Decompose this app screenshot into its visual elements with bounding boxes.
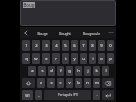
staticText: Bought bbox=[59, 31, 71, 35]
button[interactable]: l bbox=[102, 66, 109, 76]
staticText: 5 bbox=[64, 43, 67, 49]
button[interactable]: n bbox=[84, 78, 91, 88]
button[interactable]: z bbox=[37, 78, 45, 88]
button[interactable]: Bouge bbox=[31, 27, 53, 38]
staticText: Português (PT) bbox=[58, 93, 78, 97]
button[interactable]: a bbox=[28, 66, 36, 76]
staticText: . bbox=[96, 92, 98, 98]
button[interactable]: o bbox=[98, 53, 105, 64]
staticText: 9 bbox=[100, 43, 103, 49]
staticText: x bbox=[50, 80, 53, 86]
staticText: 0 bbox=[109, 43, 112, 49]
staticText: h bbox=[77, 68, 80, 74]
button[interactable]: 2 bbox=[32, 40, 40, 51]
button[interactable]: d bbox=[48, 66, 55, 76]
button[interactable]: s bbox=[38, 66, 46, 76]
staticText: n bbox=[86, 80, 89, 86]
staticText: !#1 bbox=[25, 93, 30, 97]
staticText: o bbox=[100, 56, 103, 62]
staticText: i bbox=[92, 56, 94, 62]
staticText: g bbox=[68, 68, 71, 74]
button[interactable]: 4 bbox=[52, 40, 60, 51]
button[interactable]: y bbox=[71, 53, 78, 64]
button[interactable]: . bbox=[93, 90, 100, 100]
button[interactable]: Backspace bbox=[102, 78, 114, 88]
button[interactable]: Português (PT) bbox=[44, 90, 91, 100]
staticText: a bbox=[31, 68, 34, 74]
button[interactable]: e bbox=[42, 53, 50, 64]
staticText: u bbox=[82, 56, 85, 62]
button[interactable]: r bbox=[52, 53, 60, 64]
staticText: b bbox=[77, 80, 80, 86]
button[interactable]: j bbox=[84, 66, 91, 76]
button[interactable]: c bbox=[57, 78, 64, 88]
button[interactable]: i bbox=[89, 53, 96, 64]
staticText: y bbox=[73, 56, 76, 62]
button[interactable]: , bbox=[35, 90, 42, 100]
button[interactable]: Bought bbox=[53, 27, 76, 38]
button[interactable]: 1 bbox=[22, 40, 30, 51]
staticText: 1 bbox=[25, 43, 28, 49]
button[interactable]: m bbox=[93, 78, 100, 88]
staticText: q bbox=[25, 56, 28, 62]
staticText: f bbox=[60, 68, 62, 74]
staticText: 8 bbox=[91, 43, 94, 49]
button[interactable]: 6 bbox=[71, 40, 78, 51]
staticText: e bbox=[45, 56, 48, 62]
staticText: t bbox=[65, 56, 67, 62]
button[interactable]: 0 bbox=[107, 40, 114, 51]
staticText: v bbox=[68, 80, 71, 86]
button[interactable]: p bbox=[107, 53, 114, 64]
staticText: 6 bbox=[73, 43, 76, 49]
staticText: j bbox=[87, 68, 89, 74]
staticText: m bbox=[95, 80, 99, 86]
button[interactable]: Previous suggestions bbox=[20, 27, 31, 38]
button[interactable]: u bbox=[80, 53, 87, 64]
button[interactable]: 3 bbox=[42, 40, 50, 51]
staticText: 3 bbox=[45, 43, 48, 49]
button[interactable]: 8 bbox=[89, 40, 96, 51]
button[interactable]: Bougnoule bbox=[76, 27, 106, 38]
staticText: w bbox=[34, 56, 38, 62]
button[interactable]: h bbox=[75, 66, 82, 76]
staticText: p bbox=[109, 56, 112, 62]
staticText: k bbox=[95, 68, 98, 74]
button[interactable]: Boug bbox=[20, 0, 116, 26]
staticText: 4 bbox=[55, 43, 58, 49]
button[interactable]: !#1 bbox=[22, 90, 33, 100]
button[interactable]: b bbox=[75, 78, 82, 88]
button[interactable]: v bbox=[66, 78, 73, 88]
button[interactable]: q bbox=[22, 53, 30, 64]
staticText: l bbox=[105, 68, 107, 74]
staticText: z bbox=[40, 80, 42, 86]
staticText: s bbox=[41, 68, 44, 74]
staticText: c bbox=[59, 80, 62, 86]
staticText: d bbox=[50, 68, 53, 74]
button[interactable]: More options bbox=[106, 27, 116, 38]
button[interactable]: Enter bbox=[102, 90, 114, 100]
button[interactable]: Shift bbox=[22, 78, 35, 88]
button[interactable]: f bbox=[57, 66, 64, 76]
staticText: , bbox=[38, 92, 40, 98]
staticText: Boug bbox=[23, 2, 35, 8]
button[interactable]: x bbox=[47, 78, 55, 88]
button[interactable]: 9 bbox=[98, 40, 105, 51]
button[interactable]: t bbox=[62, 53, 69, 64]
staticText: 7 bbox=[82, 43, 85, 49]
button[interactable]: k bbox=[93, 66, 100, 76]
button[interactable]: w bbox=[32, 53, 40, 64]
staticText: Bouge bbox=[37, 31, 48, 35]
button[interactable]: g bbox=[66, 66, 73, 76]
button[interactable]: 7 bbox=[80, 40, 87, 51]
staticText: 2 bbox=[35, 43, 38, 49]
staticText: r bbox=[55, 56, 57, 62]
staticText: Bougnoule bbox=[83, 31, 100, 35]
button[interactable]: 5 bbox=[62, 40, 69, 51]
